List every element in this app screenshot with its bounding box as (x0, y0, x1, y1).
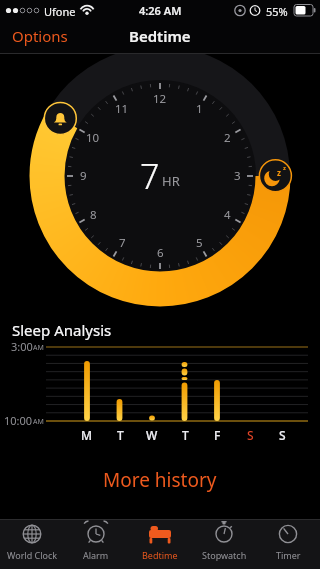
staticText: Sleep Analysis (12, 320, 112, 340)
staticText: 4:26 AM (139, 3, 182, 18)
staticText: Bedtime (142, 549, 178, 561)
staticText: Timer (276, 549, 301, 561)
staticText: 7 (119, 235, 126, 251)
staticText: 3 (234, 168, 241, 184)
staticText: World Clock (7, 549, 58, 561)
staticText: Bedtime (129, 26, 191, 46)
button[interactable]: World Clock (0, 520, 64, 569)
staticText: More history (103, 467, 217, 493)
staticText: S (247, 427, 254, 443)
staticText: AM (33, 417, 44, 427)
staticText: 10 (86, 130, 100, 146)
staticText: 3:00 (11, 339, 33, 354)
button[interactable]: Options (6, 24, 76, 48)
staticText: 11 (115, 101, 129, 117)
staticText: 2 (224, 130, 231, 146)
staticText: Alarm (83, 549, 109, 561)
staticText: 5 (196, 235, 203, 251)
staticText: W (146, 427, 158, 443)
staticText: T (117, 427, 124, 443)
staticText: 4 (224, 207, 231, 223)
staticText: 10:00 (4, 413, 33, 428)
button[interactable]: More history (80, 464, 240, 496)
button[interactable]: Stopwatch (192, 520, 256, 569)
staticText: Options (12, 26, 68, 46)
staticText: T (182, 427, 189, 443)
staticText: S (279, 427, 286, 443)
staticText: 9 (80, 168, 87, 184)
staticText: AM (33, 343, 44, 353)
staticText: 7 (140, 153, 160, 195)
staticText: 55% (266, 4, 288, 19)
staticText: 12 (153, 91, 167, 107)
staticText: 1 (196, 101, 203, 117)
staticText: 8 (90, 207, 97, 223)
staticText: z (283, 164, 286, 172)
button[interactable]: Alarm (64, 520, 128, 569)
button[interactable]: Timer (256, 520, 320, 569)
staticText: F (214, 427, 221, 443)
staticText: Ufone (44, 4, 76, 19)
button[interactable]: Bedtime (128, 520, 192, 569)
staticText: 6 (157, 245, 164, 261)
staticText: HR (162, 172, 180, 190)
staticText: Stopwatch (202, 549, 247, 561)
staticText: z (277, 167, 281, 178)
staticText: M (81, 427, 93, 443)
